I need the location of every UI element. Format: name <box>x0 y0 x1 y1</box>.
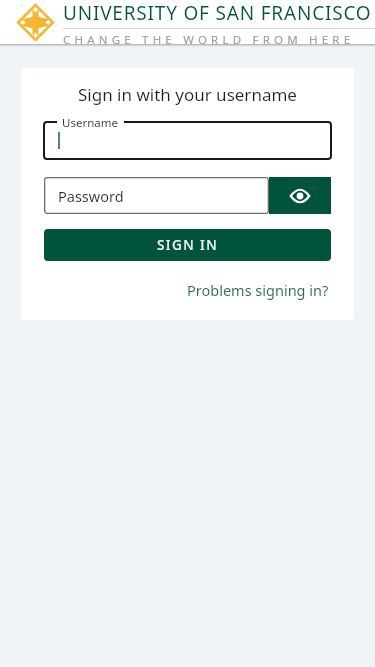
button[interactable]: Problems signing in? <box>185 278 331 302</box>
staticText: Password <box>58 186 124 206</box>
button[interactable]: SIGN IN <box>44 229 331 261</box>
staticText: SIGN IN <box>157 236 219 254</box>
button[interactable]: Show password <box>269 177 331 214</box>
staticText: Username <box>62 115 118 131</box>
button[interactable]: Password <box>44 177 269 214</box>
button[interactable]: Username <box>44 122 331 159</box>
staticText: Problems signing in? <box>187 280 329 300</box>
staticText: UNIVERSITY OF SAN FRANCISCO <box>63 0 372 26</box>
staticText: CHANGE THE WORLD FROM HERE <box>63 32 355 44</box>
staticText: Sign in with your username <box>78 83 297 106</box>
